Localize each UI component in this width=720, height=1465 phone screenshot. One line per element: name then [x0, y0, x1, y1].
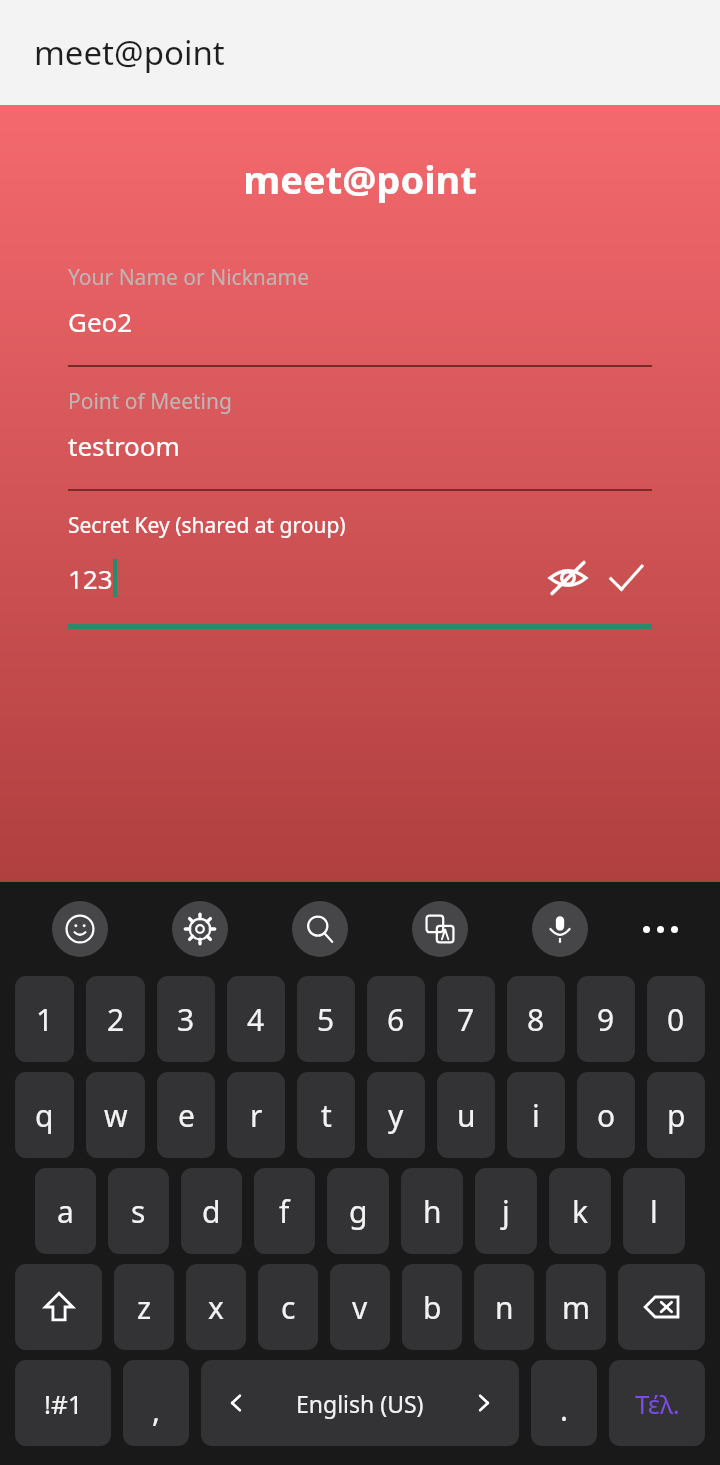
button[interactable]: g: [327, 1168, 389, 1254]
button[interactable]: Confirm: [600, 552, 652, 604]
staticText: v: [352, 1287, 368, 1328]
staticText: Secret Key (shared at group): [68, 511, 346, 540]
staticText: .: [560, 1389, 569, 1430]
button[interactable]: ,: [123, 1360, 189, 1446]
button[interactable]: o: [577, 1072, 635, 1158]
button[interactable]: Hide password: [542, 552, 594, 604]
button[interactable]: m: [546, 1264, 606, 1350]
staticText: meet@point: [34, 30, 225, 75]
button[interactable]: Secret Key (shared at group): [68, 511, 652, 629]
staticText: o: [597, 1095, 616, 1136]
staticText: z: [137, 1287, 152, 1328]
staticText: w: [104, 1095, 128, 1136]
button[interactable]: v: [330, 1264, 390, 1350]
button[interactable]: c: [258, 1264, 318, 1350]
staticText: r: [250, 1095, 263, 1136]
staticText: c: [281, 1287, 296, 1328]
button[interactable]: w: [86, 1072, 145, 1158]
button[interactable]: d: [181, 1168, 242, 1254]
staticText: i: [532, 1095, 540, 1136]
staticText: Geo2: [68, 304, 133, 339]
staticText: 8: [527, 999, 545, 1040]
button[interactable]: 4: [227, 976, 285, 1062]
button[interactable]: 8: [507, 976, 565, 1062]
staticText: 9: [597, 999, 615, 1040]
staticText: x: [208, 1287, 224, 1328]
button[interactable]: Voice input: [500, 894, 620, 964]
staticText: j: [502, 1191, 510, 1232]
staticText: l: [650, 1191, 658, 1232]
button[interactable]: 7: [437, 976, 495, 1062]
button[interactable]: l: [623, 1168, 685, 1254]
button[interactable]: .: [531, 1360, 597, 1446]
staticText: e: [178, 1095, 195, 1136]
button[interactable]: Settings: [140, 894, 260, 964]
button[interactable]: e: [157, 1072, 215, 1158]
staticText: y: [388, 1095, 404, 1136]
button[interactable]: 2: [86, 976, 145, 1062]
button[interactable]: Translate: [380, 894, 500, 964]
staticText: Τέλ.: [635, 1386, 680, 1421]
button[interactable]: a: [35, 1168, 96, 1254]
button[interactable]: s: [108, 1168, 169, 1254]
button[interactable]: 0: [647, 976, 705, 1062]
button[interactable]: b: [402, 1264, 462, 1350]
button[interactable]: j: [475, 1168, 537, 1254]
button[interactable]: i: [507, 1072, 565, 1158]
staticText: u: [457, 1095, 476, 1136]
button[interactable]: y: [367, 1072, 425, 1158]
staticText: n: [495, 1287, 514, 1328]
button[interactable]: 5: [297, 976, 355, 1062]
staticText: m: [562, 1287, 591, 1328]
staticText: 4: [247, 999, 265, 1040]
button[interactable]: h: [401, 1168, 463, 1254]
staticText: t: [321, 1095, 332, 1136]
button[interactable]: x: [186, 1264, 246, 1350]
staticText: 6: [387, 999, 405, 1040]
staticText: 1: [36, 999, 54, 1040]
staticText: English (US): [296, 1388, 424, 1419]
button[interactable]: 3: [157, 976, 215, 1062]
staticText: b: [423, 1287, 442, 1328]
button[interactable]: r: [227, 1072, 285, 1158]
staticText: p: [667, 1095, 686, 1136]
button[interactable]: f: [254, 1168, 315, 1254]
button[interactable]: Shift: [15, 1264, 102, 1350]
button[interactable]: !#1: [15, 1360, 111, 1446]
staticText: 123: [68, 561, 113, 596]
button[interactable]: t: [297, 1072, 355, 1158]
button[interactable]: z: [114, 1264, 174, 1350]
button[interactable]: More options: [620, 894, 700, 964]
button[interactable]: u: [437, 1072, 495, 1158]
staticText: 5: [317, 999, 335, 1040]
button[interactable]: k: [549, 1168, 611, 1254]
button[interactable]: Point of Meeting: [68, 387, 652, 491]
staticText: 0: [667, 999, 685, 1040]
button[interactable]: English (US): [201, 1360, 519, 1446]
button[interactable]: Backspace: [618, 1264, 705, 1350]
staticText: Point of Meeting: [68, 387, 232, 416]
staticText: q: [35, 1095, 54, 1136]
button[interactable]: Emoji: [20, 894, 140, 964]
staticText: g: [349, 1191, 368, 1232]
staticText: 3: [177, 999, 195, 1040]
staticText: f: [279, 1191, 290, 1232]
button[interactable]: p: [647, 1072, 705, 1158]
staticText: d: [202, 1191, 221, 1232]
staticText: ,: [152, 1390, 161, 1431]
button[interactable]: Τέλ.: [609, 1360, 705, 1446]
staticText: Your Name or Nickname: [68, 263, 310, 292]
button[interactable]: Your Name or Nickname: [68, 263, 652, 367]
staticText: testroom: [68, 428, 180, 463]
button[interactable]: Search: [260, 894, 380, 964]
button[interactable]: 1: [15, 976, 74, 1062]
staticText: 2: [107, 999, 125, 1040]
staticText: 7: [457, 999, 475, 1040]
button[interactable]: 6: [367, 976, 425, 1062]
staticText: s: [131, 1191, 146, 1232]
button[interactable]: 9: [577, 976, 635, 1062]
button[interactable]: q: [15, 1072, 74, 1158]
staticText: k: [572, 1191, 589, 1232]
button[interactable]: n: [474, 1264, 534, 1350]
staticText: h: [423, 1191, 442, 1232]
